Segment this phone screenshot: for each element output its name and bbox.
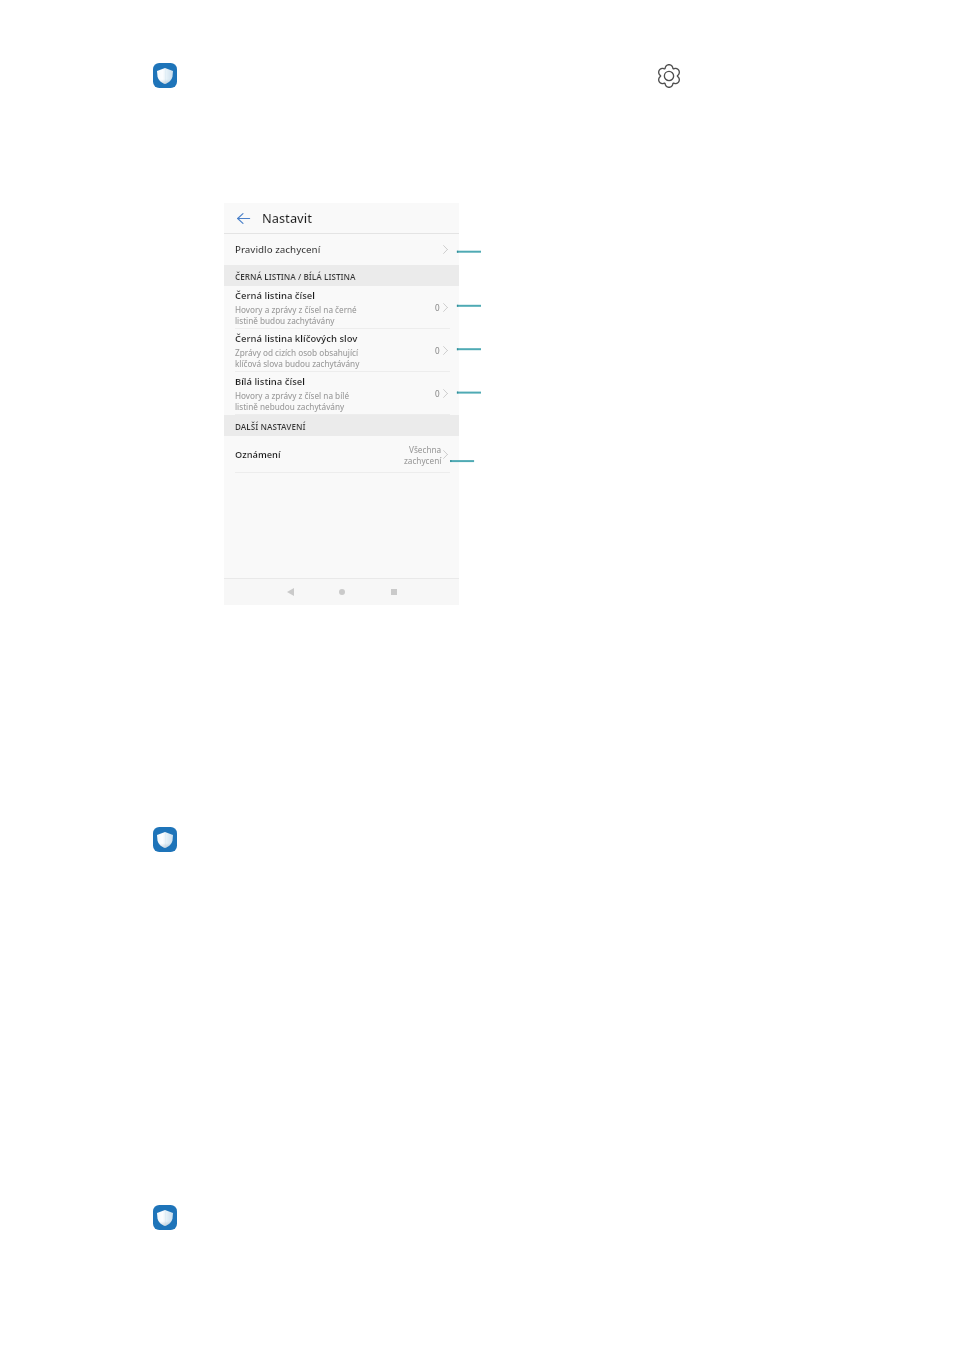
- button[interactable]: Settings: [657, 64, 681, 88]
- button[interactable]: Černá listina čísel: [224, 286, 459, 329]
- staticText: Všechna: [409, 444, 442, 455]
- staticText: Bílá listina čísel: [235, 375, 305, 388]
- button[interactable]: Back: [280, 582, 300, 602]
- staticText: 0: [435, 345, 440, 356]
- button[interactable]: Nastavit: [224, 203, 459, 233]
- button[interactable]: Bílá listina čísel: [224, 372, 459, 415]
- staticText: Černá listina čísel: [235, 289, 315, 302]
- staticText: Černá listina klíčových slov: [235, 332, 358, 345]
- button[interactable]: Pravidlo zachycení: [224, 234, 459, 265]
- staticText: Zprávy od cizích osob obsahující: [235, 347, 359, 358]
- staticText: Oznámení: [235, 448, 281, 461]
- staticText: Nastavit: [262, 210, 312, 227]
- staticText: ČERNÁ LISTINA / BÍLÁ LISTINA: [235, 271, 356, 282]
- staticText: 0: [435, 302, 440, 313]
- staticText: DALŠÍ NASTAVENÍ: [235, 421, 306, 432]
- button[interactable]: Home: [332, 582, 352, 602]
- button[interactable]: Recents: [384, 582, 404, 602]
- staticText: Pravidlo zachycení: [235, 243, 321, 256]
- staticText: listině nebudou zachytávány: [235, 401, 345, 412]
- staticText: listině budou zachytávány: [235, 315, 335, 326]
- button[interactable]: Phone Manager app icon: [153, 63, 177, 88]
- button[interactable]: Phone Manager app icon: [153, 827, 177, 852]
- staticText: 0: [435, 388, 440, 399]
- button[interactable]: Phone Manager app icon: [153, 1205, 177, 1230]
- staticText: zachycení: [404, 455, 442, 466]
- staticText: Hovory a zprávy z čísel na černé: [235, 304, 357, 315]
- staticText: Hovory a zprávy z čísel na bílé: [235, 390, 349, 401]
- button[interactable]: Oznámení: [224, 436, 459, 473]
- button[interactable]: Černá listina klíčových slov: [224, 329, 459, 372]
- staticText: klíčová slova budou zachytávány: [235, 358, 360, 369]
